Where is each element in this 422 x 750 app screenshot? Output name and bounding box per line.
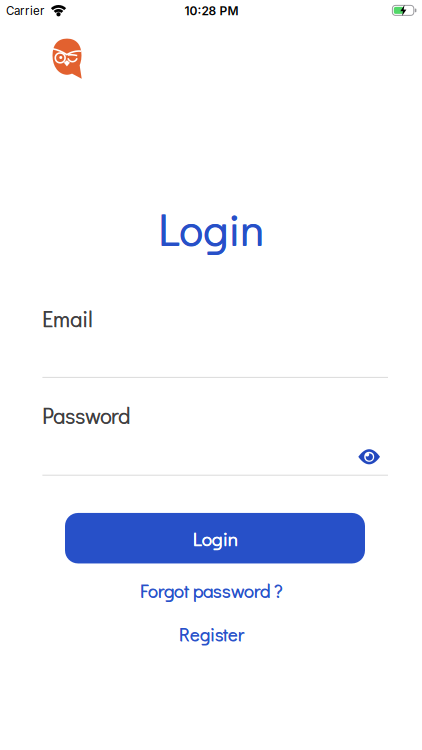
staticText: 10:28 PM (184, 4, 238, 18)
staticText: Email (42, 304, 92, 333)
button[interactable] (0, 0, 422, 750)
staticText: Login (193, 525, 238, 551)
staticText: Forgot password ? (140, 578, 283, 602)
staticText: Password (42, 401, 130, 429)
staticText: Login (159, 199, 265, 257)
staticText: Register (179, 622, 244, 646)
staticText: Email (42, 305, 92, 333)
staticText: Login (158, 199, 264, 257)
staticText: Forgot password ? (140, 578, 283, 603)
button[interactable]: Register (136, 620, 286, 648)
staticText: Login (158, 199, 264, 258)
button[interactable] (42, 404, 388, 476)
button[interactable] (42, 306, 388, 378)
staticText: Password (42, 402, 130, 430)
staticText: Register (179, 622, 244, 646)
staticText: Login (192, 525, 237, 551)
staticText: Carrier (6, 4, 44, 18)
staticText: Login (193, 526, 238, 551)
button[interactable]: Forgot password ? (61, 576, 361, 604)
button[interactable]: Login (65, 513, 365, 563)
